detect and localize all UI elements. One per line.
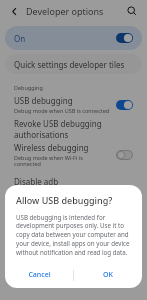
staticText: Wireless debugging: [14, 142, 89, 153]
staticText: Developer options: [26, 5, 104, 17]
staticText: Revoke USB debugging authorisations: [14, 118, 133, 138]
staticText: Quick settings developer tiles: [14, 59, 125, 70]
staticText: USB debugging: [14, 95, 73, 106]
button[interactable]: Off: [116, 150, 133, 160]
button[interactable]: Select mock location app: [0, 256, 147, 276]
button[interactable]: Off: [116, 242, 133, 252]
button[interactable]: OK: [74, 265, 142, 285]
button[interactable]: On: [116, 100, 133, 110]
button[interactable]: 3GPP AT commands: [0, 237, 147, 256]
staticText: Cancel: [28, 270, 51, 280]
staticText: Allow USB debugging?: [16, 194, 113, 206]
staticText: 3GPP AT commands: [14, 241, 90, 252]
button[interactable]: Revoke USB debugging authorisations: [0, 118, 147, 138]
staticText: Debug mode when Wi-Fi is connected: [14, 154, 110, 168]
staticText: Disable automatic revocation of adb auth…: [14, 198, 110, 233]
button[interactable]: Quick settings developer tiles: [5, 54, 142, 74]
button[interactable]: Back: [7, 4, 21, 18]
button[interactable]: USB debugging: [0, 91, 147, 118]
button[interactable]: On: [116, 33, 133, 43]
button[interactable]: Cancel: [5, 265, 73, 285]
staticText: Debugging: [14, 84, 43, 91]
button[interactable]: Disable adb authorisation timeout: [0, 172, 147, 237]
button[interactable]: On: [5, 26, 142, 50]
button[interactable]: Wireless debugging: [0, 138, 147, 172]
staticText: Debug mode when USB is connected: [14, 107, 110, 114]
staticText: Disable adb authorisation timeout: [14, 176, 110, 197]
staticText: USB debugging is intended for developmen…: [16, 213, 131, 256]
staticText: On: [14, 33, 26, 44]
button[interactable]: Search: [124, 3, 140, 19]
staticText: OK: [103, 270, 113, 280]
